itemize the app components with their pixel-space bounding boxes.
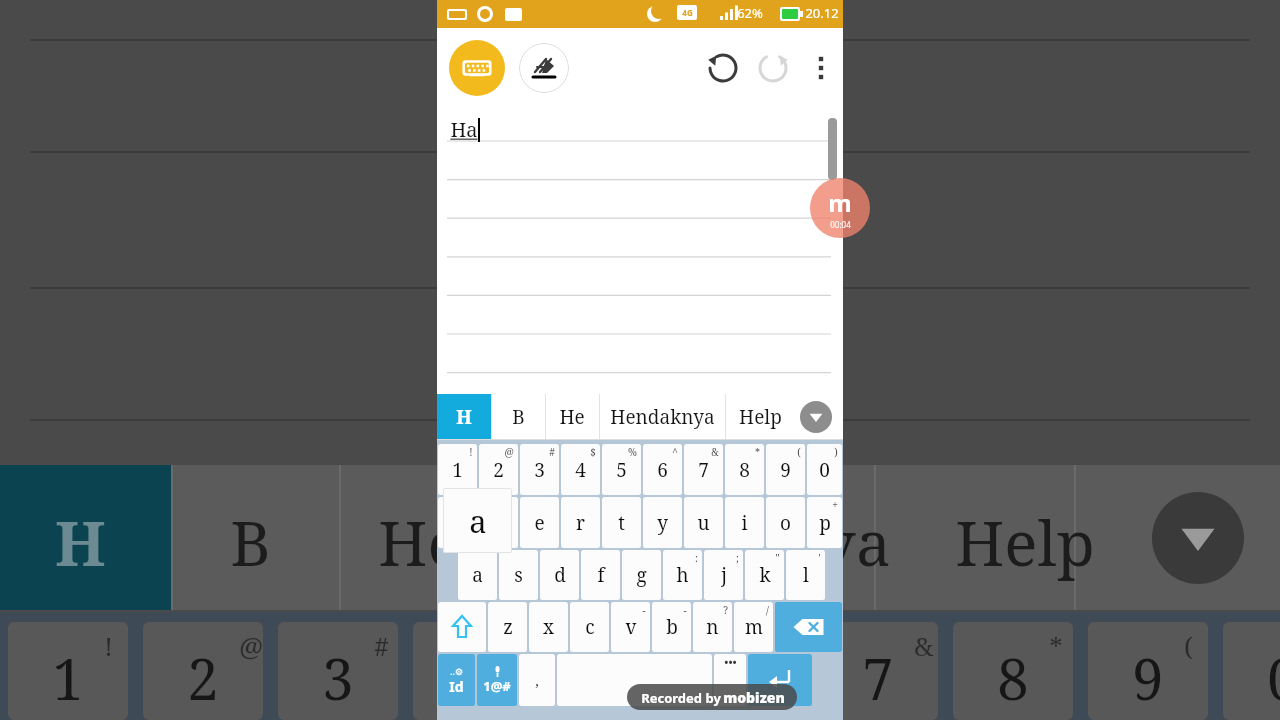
- button[interactable]: -: [652, 602, 691, 652]
- button[interactable]: ,: [519, 654, 555, 706]
- button[interactable]: H: [437, 394, 491, 440]
- button[interactable]: [438, 602, 486, 652]
- button[interactable]: ^: [643, 444, 682, 495]
- button[interactable]: 1@#: [477, 654, 517, 706]
- staticText: a: [469, 500, 487, 542]
- button[interactable]: Handwriting input: [519, 43, 569, 93]
- staticText: ^: [672, 445, 678, 459]
- button[interactable]: ): [807, 444, 842, 495]
- staticText: 1@#: [483, 677, 511, 695]
- button[interactable]: (: [766, 444, 805, 495]
- staticText: :: [695, 551, 698, 565]
- button[interactable]: i: [725, 497, 764, 548]
- button[interactable]: He: [545, 394, 599, 440]
- staticText: +: [832, 498, 838, 512]
- button[interactable]: g: [622, 550, 661, 600]
- staticText: ': [818, 551, 821, 565]
- button[interactable]: &: [684, 444, 723, 495]
- staticText: d: [554, 562, 566, 588]
- staticText: 7: [862, 640, 894, 716]
- staticText: t: [618, 510, 625, 536]
- button[interactable]: e: [520, 497, 559, 548]
- staticText: 2: [493, 457, 504, 483]
- button[interactable]: ": [745, 550, 784, 600]
- button[interactable]: *: [725, 444, 764, 495]
- button[interactable]: z: [488, 602, 527, 652]
- staticText: *: [1049, 628, 1063, 663]
- button[interactable]: Show more suggestions: [800, 401, 832, 433]
- staticText: H: [456, 404, 472, 430]
- staticText: 0: [1267, 640, 1280, 716]
- staticText: 20.12: [805, 4, 839, 22]
- staticText: v: [625, 614, 637, 640]
- button[interactable]: t: [602, 497, 641, 548]
- button[interactable]: B: [491, 394, 545, 440]
- staticText: 62%: [737, 4, 763, 22]
- button[interactable]: ': [786, 550, 825, 600]
- button[interactable]: u: [684, 497, 723, 548]
- button[interactable]: a: [458, 550, 497, 600]
- button[interactable]: f: [581, 550, 620, 600]
- button[interactable]: /: [734, 602, 773, 652]
- button[interactable]: w: [479, 497, 518, 548]
- button[interactable]: !: [438, 444, 477, 495]
- button[interactable]: r: [561, 497, 600, 548]
- button[interactable]: #: [520, 444, 559, 495]
- staticText: g: [636, 562, 647, 588]
- staticText: ^: [779, 628, 794, 663]
- button[interactable]: More options: [799, 46, 843, 90]
- button[interactable]: o: [766, 497, 805, 548]
- staticText: j: [721, 562, 727, 588]
- staticText: #: [374, 628, 389, 663]
- button[interactable]: [748, 654, 812, 706]
- button[interactable]: @: [479, 444, 518, 495]
- button[interactable]: Undo: [701, 46, 745, 90]
- staticText: 9: [780, 457, 791, 483]
- staticText: 6: [727, 640, 759, 716]
- button[interactable]: x: [529, 602, 568, 652]
- staticText: ): [834, 445, 838, 459]
- staticText: $: [509, 628, 524, 663]
- staticText: (: [1184, 628, 1193, 663]
- staticText: 4: [575, 457, 586, 483]
- button[interactable]: Hendaknya: [599, 394, 725, 440]
- button[interactable]: y: [643, 497, 682, 548]
- staticText: B: [230, 500, 271, 584]
- button[interactable]: [775, 602, 842, 652]
- button[interactable]: ..⚙: [438, 654, 475, 706]
- button[interactable]: %: [602, 444, 641, 495]
- button[interactable]: [557, 654, 712, 706]
- button[interactable]: ;: [704, 550, 743, 600]
- staticText: k: [759, 562, 771, 588]
- staticText: b: [666, 614, 678, 640]
- staticText: @: [239, 628, 263, 663]
- staticText: $: [590, 445, 596, 459]
- staticText: (: [797, 445, 801, 459]
- staticText: B: [512, 404, 525, 430]
- staticText: -: [683, 603, 687, 617]
- staticText: 6: [657, 457, 668, 483]
- staticText: &: [711, 445, 719, 459]
- button[interactable]: ?: [693, 602, 732, 652]
- button[interactable]: s: [499, 550, 538, 600]
- button[interactable]: Keyboard input: [449, 40, 505, 96]
- button[interactable]: •••: [714, 654, 746, 706]
- button[interactable]: -: [611, 602, 650, 652]
- button[interactable]: q: [438, 497, 477, 548]
- button[interactable]: Help: [725, 394, 795, 440]
- staticText: 5: [592, 640, 624, 716]
- button[interactable]: Redo: [751, 46, 795, 90]
- button[interactable]: +: [807, 497, 842, 548]
- staticText: e: [534, 510, 545, 536]
- button[interactable]: Mobizen recorder: [810, 178, 870, 238]
- button[interactable]: c: [570, 602, 609, 652]
- staticText: 8: [739, 457, 750, 483]
- staticText: /: [766, 603, 769, 617]
- staticText: Help: [739, 404, 782, 430]
- button[interactable]: $: [561, 444, 600, 495]
- staticText: He: [559, 404, 585, 430]
- button[interactable]: d: [540, 550, 579, 600]
- button[interactable]: :: [663, 550, 702, 600]
- staticText: a: [472, 562, 483, 588]
- staticText: Recorded by: [639, 689, 723, 707]
